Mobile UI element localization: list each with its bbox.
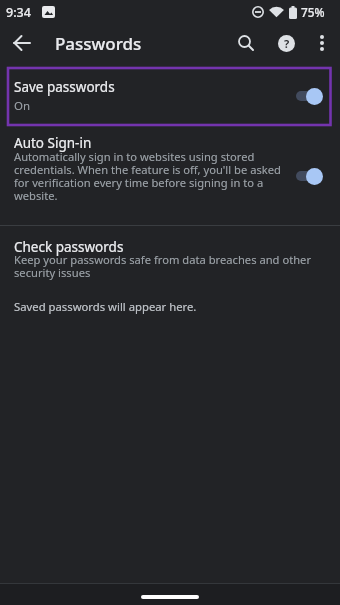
staticText: Auto Sign-in <box>14 134 92 152</box>
button[interactable] <box>296 86 330 106</box>
button[interactable]: Auto Sign-in <box>0 130 340 212</box>
staticText: Passwords <box>55 32 142 55</box>
staticText: 9:34 <box>6 4 31 21</box>
button[interactable] <box>296 166 330 186</box>
button[interactable] <box>308 29 336 57</box>
staticText: 75% <box>301 4 325 20</box>
button[interactable]: ? <box>272 29 300 57</box>
staticText: Save passwords <box>14 78 115 96</box>
staticText: Saved passwords will appear here. <box>14 299 197 314</box>
button[interactable]: Check passwords <box>0 234 340 286</box>
button[interactable] <box>8 29 36 57</box>
button[interactable]: Save passwords <box>0 67 340 126</box>
staticText: ? <box>284 36 290 51</box>
staticText: Keep your passwords safe from data breac… <box>14 252 312 280</box>
staticText: On <box>14 98 31 114</box>
staticText: Automatically sign in to websites using … <box>14 149 281 203</box>
staticText: Check passwords <box>14 238 124 256</box>
button[interactable] <box>232 29 260 57</box>
